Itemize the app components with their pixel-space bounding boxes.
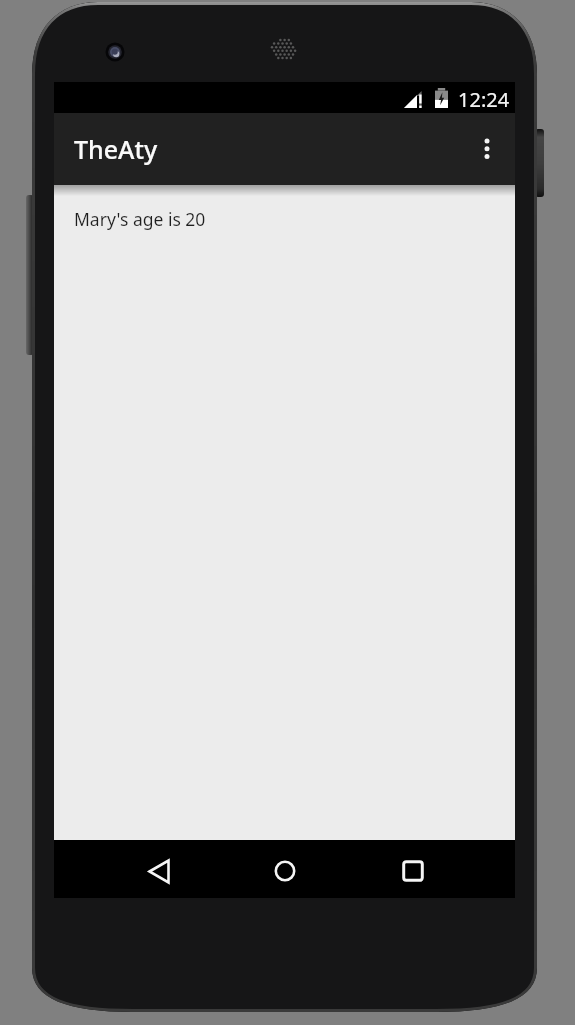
button[interactable] (389, 847, 437, 895)
button[interactable] (135, 847, 183, 895)
button[interactable] (471, 133, 503, 165)
staticText: Mary's age is 20 (74, 207, 206, 231)
button[interactable] (261, 847, 309, 895)
staticText: TheAty (74, 132, 158, 166)
staticText: 12:24 (458, 86, 510, 113)
